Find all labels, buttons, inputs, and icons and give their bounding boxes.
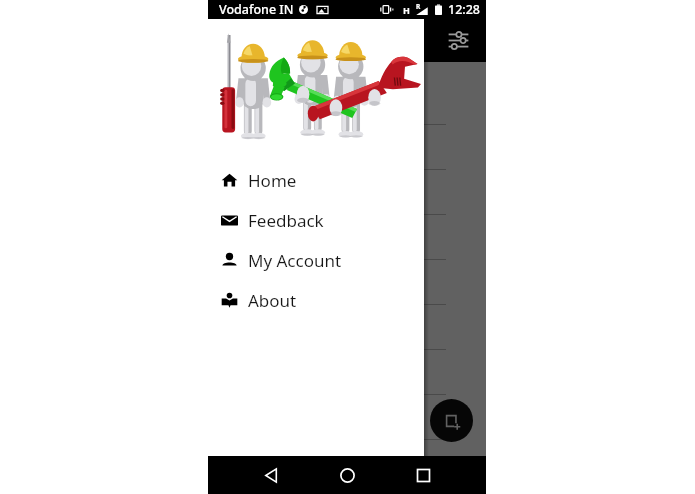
- button[interactable]: Feedback: [208, 200, 424, 240]
- button[interactable]: Filter settings: [441, 23, 475, 57]
- staticText: My Account: [248, 249, 342, 272]
- button[interactable]: Home: [208, 160, 424, 200]
- button[interactable]: About: [208, 280, 424, 320]
- button[interactable]: My Account: [208, 240, 424, 280]
- button[interactable]: Recent apps: [404, 456, 442, 494]
- staticText: Feedback: [248, 209, 324, 232]
- staticText: 12:28: [448, 1, 481, 18]
- button[interactable]: Add note: [430, 399, 473, 442]
- staticText: Home: [248, 169, 297, 192]
- button[interactable]: Back: [252, 456, 290, 494]
- staticText: R: [416, 2, 421, 11]
- button[interactable]: Home: [328, 456, 366, 494]
- staticText: H: [403, 4, 410, 16]
- staticText: About: [248, 289, 297, 312]
- staticText: Vodafone IN: [219, 1, 294, 18]
